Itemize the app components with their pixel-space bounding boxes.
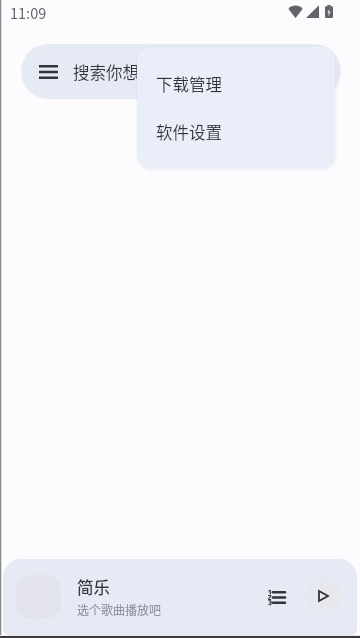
button[interactable]: Playlist bbox=[258, 579, 294, 615]
button[interactable]: 搜索你想听的音乐 bbox=[21, 44, 341, 99]
button[interactable]: 软件设置 bbox=[137, 108, 335, 156]
staticText: 选个歌曲播放吧 bbox=[77, 601, 162, 618]
button[interactable]: 简乐 bbox=[3, 559, 357, 635]
staticText: 下载管理 bbox=[156, 72, 222, 96]
button[interactable]: Play bbox=[305, 577, 342, 614]
staticText: 简乐 bbox=[77, 575, 110, 599]
staticText: 搜索你想听的音乐 bbox=[73, 60, 205, 84]
button[interactable]: 下载管理 bbox=[137, 60, 335, 108]
staticText: 11:09 bbox=[10, 2, 47, 23]
staticText: 软件设置 bbox=[156, 120, 222, 144]
